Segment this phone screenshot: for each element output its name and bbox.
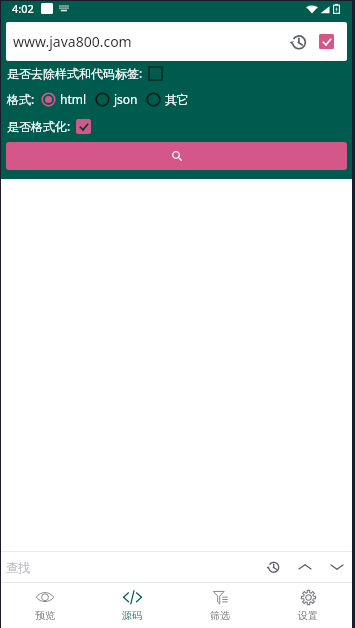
button[interactable]: 其它: [146, 92, 189, 107]
button[interactable]: 预览: [1, 583, 88, 628]
button[interactable]: Search history: [260, 554, 286, 580]
staticText: 4:02: [12, 1, 34, 16]
staticText: 是否去除样式和代码标签:: [7, 65, 143, 81]
button[interactable]: Next result: [324, 554, 350, 580]
staticText: 查找: [6, 560, 30, 575]
button[interactable]: json: [95, 91, 138, 107]
staticText: 格式:: [7, 91, 35, 107]
button[interactable]: Previous result: [292, 554, 318, 580]
staticText: html: [60, 91, 87, 107]
button[interactable]: 源码: [88, 583, 176, 628]
button[interactable]: Search: [6, 142, 347, 170]
button[interactable]: 设置: [264, 583, 352, 628]
staticText: 是否格式化:: [7, 118, 71, 134]
staticText: 源码: [122, 609, 142, 622]
button[interactable]: Format checkbox: [76, 119, 91, 134]
button[interactable]: History: [286, 30, 310, 54]
button[interactable]: 筛选: [176, 583, 264, 628]
staticText: 预览: [35, 609, 55, 622]
staticText: 设置: [298, 609, 318, 622]
staticText: 筛选: [210, 609, 230, 622]
button[interactable]: Strip tags checkbox: [149, 67, 162, 80]
staticText: 其它: [165, 92, 189, 107]
staticText: www.java800.com: [13, 32, 132, 51]
staticText: json: [114, 91, 138, 107]
button[interactable]: html: [41, 91, 87, 107]
button[interactable]: Toggle selection: [319, 34, 334, 49]
